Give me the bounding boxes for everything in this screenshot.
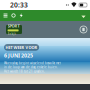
staticText: in de loop van de dag enkele buien. bbox=[4, 65, 58, 69]
button[interactable]: Open bbox=[79, 25, 88, 34]
staticText: 6 JUNI 2025 bbox=[4, 52, 33, 59]
staticText: Bekijk bbox=[8, 32, 16, 36]
staticText: HET WEER VOOR bbox=[6, 45, 38, 50]
button[interactable]: Alerts bbox=[17, 10, 25, 21]
staticText: Het wordt 18 tot 21 graden. bbox=[4, 70, 45, 73]
button[interactable]: Search bbox=[9, 10, 17, 21]
button[interactable]: Download bbox=[79, 10, 88, 21]
staticText: Woensdag begint wisselend bewolkt met bbox=[4, 61, 61, 65]
button[interactable]: SPORT bbox=[6, 25, 22, 34]
staticText: 20:33 bbox=[10, 1, 28, 9]
button[interactable]: Menu bbox=[1, 10, 9, 21]
staticText: SPORT bbox=[8, 23, 20, 29]
